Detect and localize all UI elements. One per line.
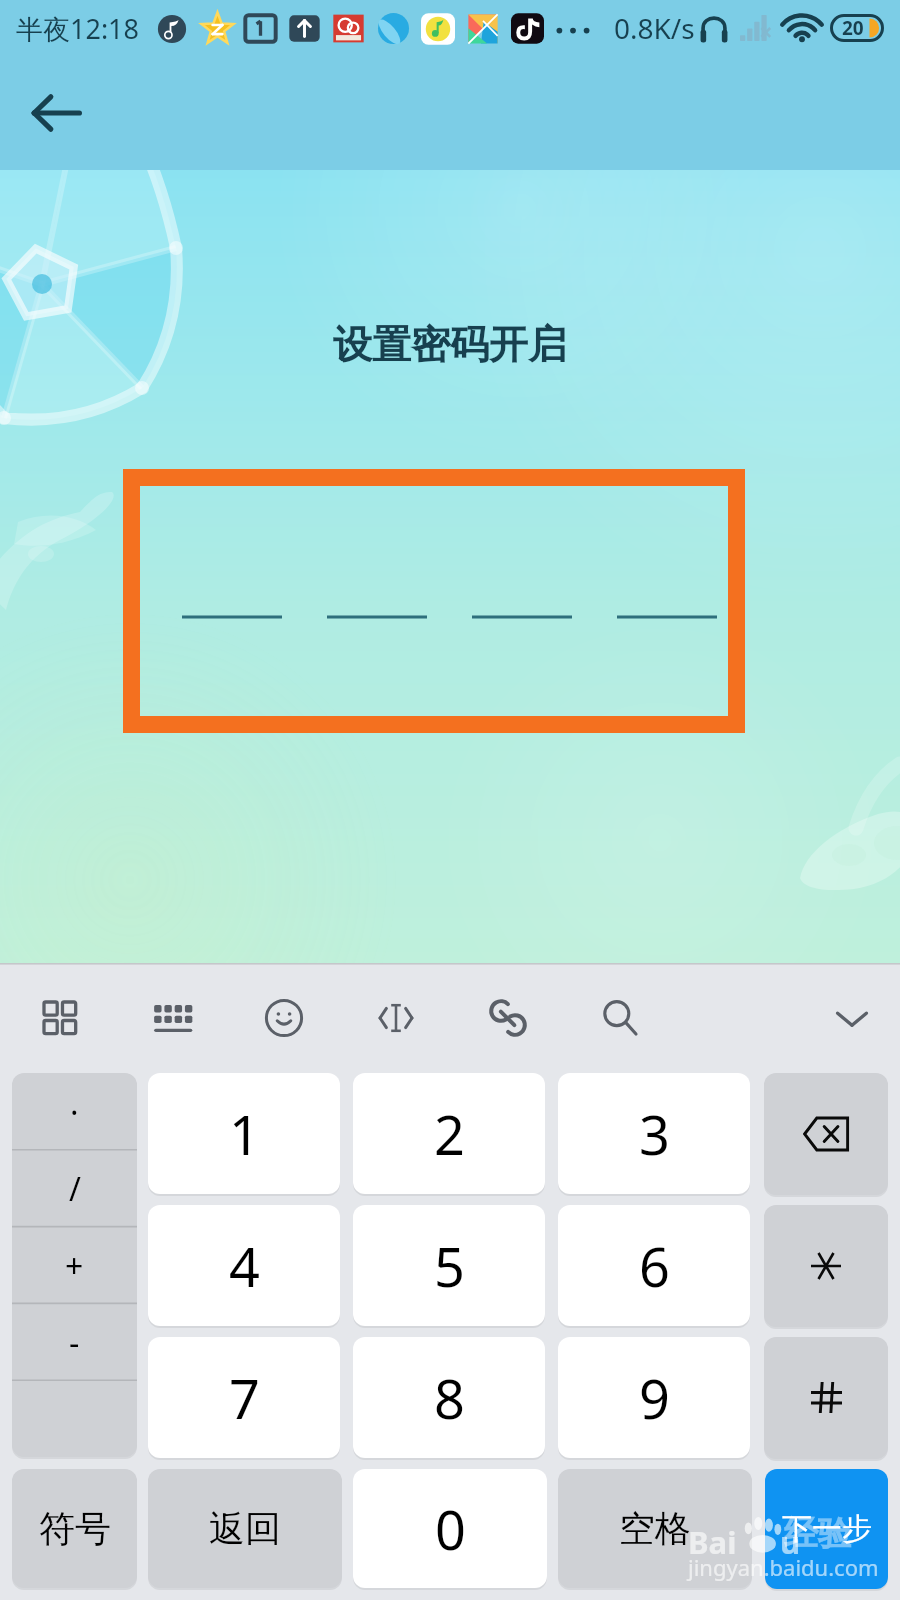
button[interactable]: Back: [14, 71, 98, 155]
button[interactable]: 7: [148, 1337, 340, 1458]
staticText: 设置密码开启: [333, 320, 567, 369]
button[interactable]: 0: [353, 1469, 547, 1588]
staticText: 符号: [39, 1506, 111, 1551]
button[interactable]: 空格: [558, 1469, 752, 1588]
staticText: -: [69, 1321, 80, 1365]
button[interactable]: Clipboard: [476, 986, 540, 1050]
staticText: 8: [434, 1361, 465, 1435]
staticText: ·: [70, 1090, 79, 1134]
staticText: 3: [639, 1097, 670, 1171]
button[interactable]: Emoji: [252, 986, 316, 1050]
button[interactable]: Search: [588, 986, 652, 1050]
staticText: 7: [229, 1361, 260, 1435]
staticText: 下一步: [782, 1510, 872, 1548]
staticText: 半夜12:18: [16, 10, 140, 47]
button[interactable]: +: [12, 1227, 137, 1304]
button[interactable]: 9: [558, 1337, 750, 1458]
staticText: 5: [434, 1229, 465, 1303]
button[interactable]: Hide keyboard: [820, 986, 884, 1050]
button[interactable]: 下一步: [765, 1469, 888, 1589]
button[interactable]: Keyboard layout: [140, 986, 204, 1050]
button[interactable]: Backspace: [764, 1073, 888, 1195]
button[interactable]: Hash: [764, 1337, 888, 1459]
staticText: 9: [639, 1361, 670, 1435]
staticText: 20: [842, 15, 864, 41]
staticText: u: [780, 1521, 801, 1563]
button[interactable]: /: [12, 1150, 137, 1227]
staticText: 空格: [619, 1506, 691, 1551]
button[interactable]: 6: [558, 1205, 750, 1326]
button[interactable]: 符号: [12, 1469, 137, 1588]
staticText: 6: [639, 1229, 670, 1303]
button[interactable]: 5: [353, 1205, 545, 1326]
staticText: +: [65, 1244, 84, 1288]
button[interactable]: -: [12, 1304, 137, 1381]
staticText: Bai: [688, 1521, 737, 1563]
button[interactable]: 返回: [148, 1469, 342, 1588]
staticText: /: [69, 1167, 81, 1211]
staticText: 返回: [209, 1506, 281, 1551]
staticText: jingyan.baidu.com: [688, 1552, 879, 1582]
staticText: 经验: [784, 1512, 852, 1555]
staticText: 0: [435, 1492, 466, 1566]
button[interactable]: 4: [148, 1205, 340, 1326]
staticText: 0.8K/s: [614, 9, 695, 47]
button[interactable]: 2: [353, 1073, 545, 1194]
button[interactable]: ·: [12, 1073, 137, 1150]
button[interactable]: 1: [148, 1073, 340, 1194]
staticText: 1: [229, 1097, 260, 1171]
button[interactable]: Password input, 4 digits: [123, 469, 745, 733]
button[interactable]: Asterisk: [764, 1205, 888, 1327]
staticText: 2: [434, 1097, 465, 1171]
button[interactable]: 3: [558, 1073, 750, 1194]
button[interactable]: Apps: [28, 986, 92, 1050]
button[interactable]: 8: [353, 1337, 545, 1458]
staticText: 4: [229, 1229, 260, 1303]
button[interactable]: Move cursor: [364, 986, 428, 1050]
